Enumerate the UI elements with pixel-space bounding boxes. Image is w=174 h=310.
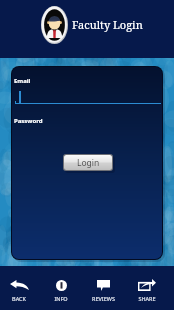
staticText: Email	[14, 77, 31, 85]
other: Back	[10, 280, 29, 290]
other: Info	[56, 280, 67, 291]
staticText: SHARE	[138, 295, 156, 302]
staticText: INFO	[54, 295, 68, 302]
staticText: Login	[77, 157, 100, 169]
button[interactable]: Info	[40, 266, 82, 310]
button[interactable]: Back	[0, 266, 40, 310]
staticText: Password	[14, 117, 43, 125]
staticText: Faculty Login	[72, 17, 143, 32]
other: Share	[138, 279, 156, 291]
button[interactable]: Reviews	[82, 266, 125, 310]
staticText: BACK	[12, 295, 26, 302]
other: Reviews	[97, 280, 110, 291]
staticText: REVIEWS	[92, 295, 115, 302]
button[interactable]: Login	[64, 155, 112, 170]
button[interactable]: Share	[125, 266, 168, 310]
